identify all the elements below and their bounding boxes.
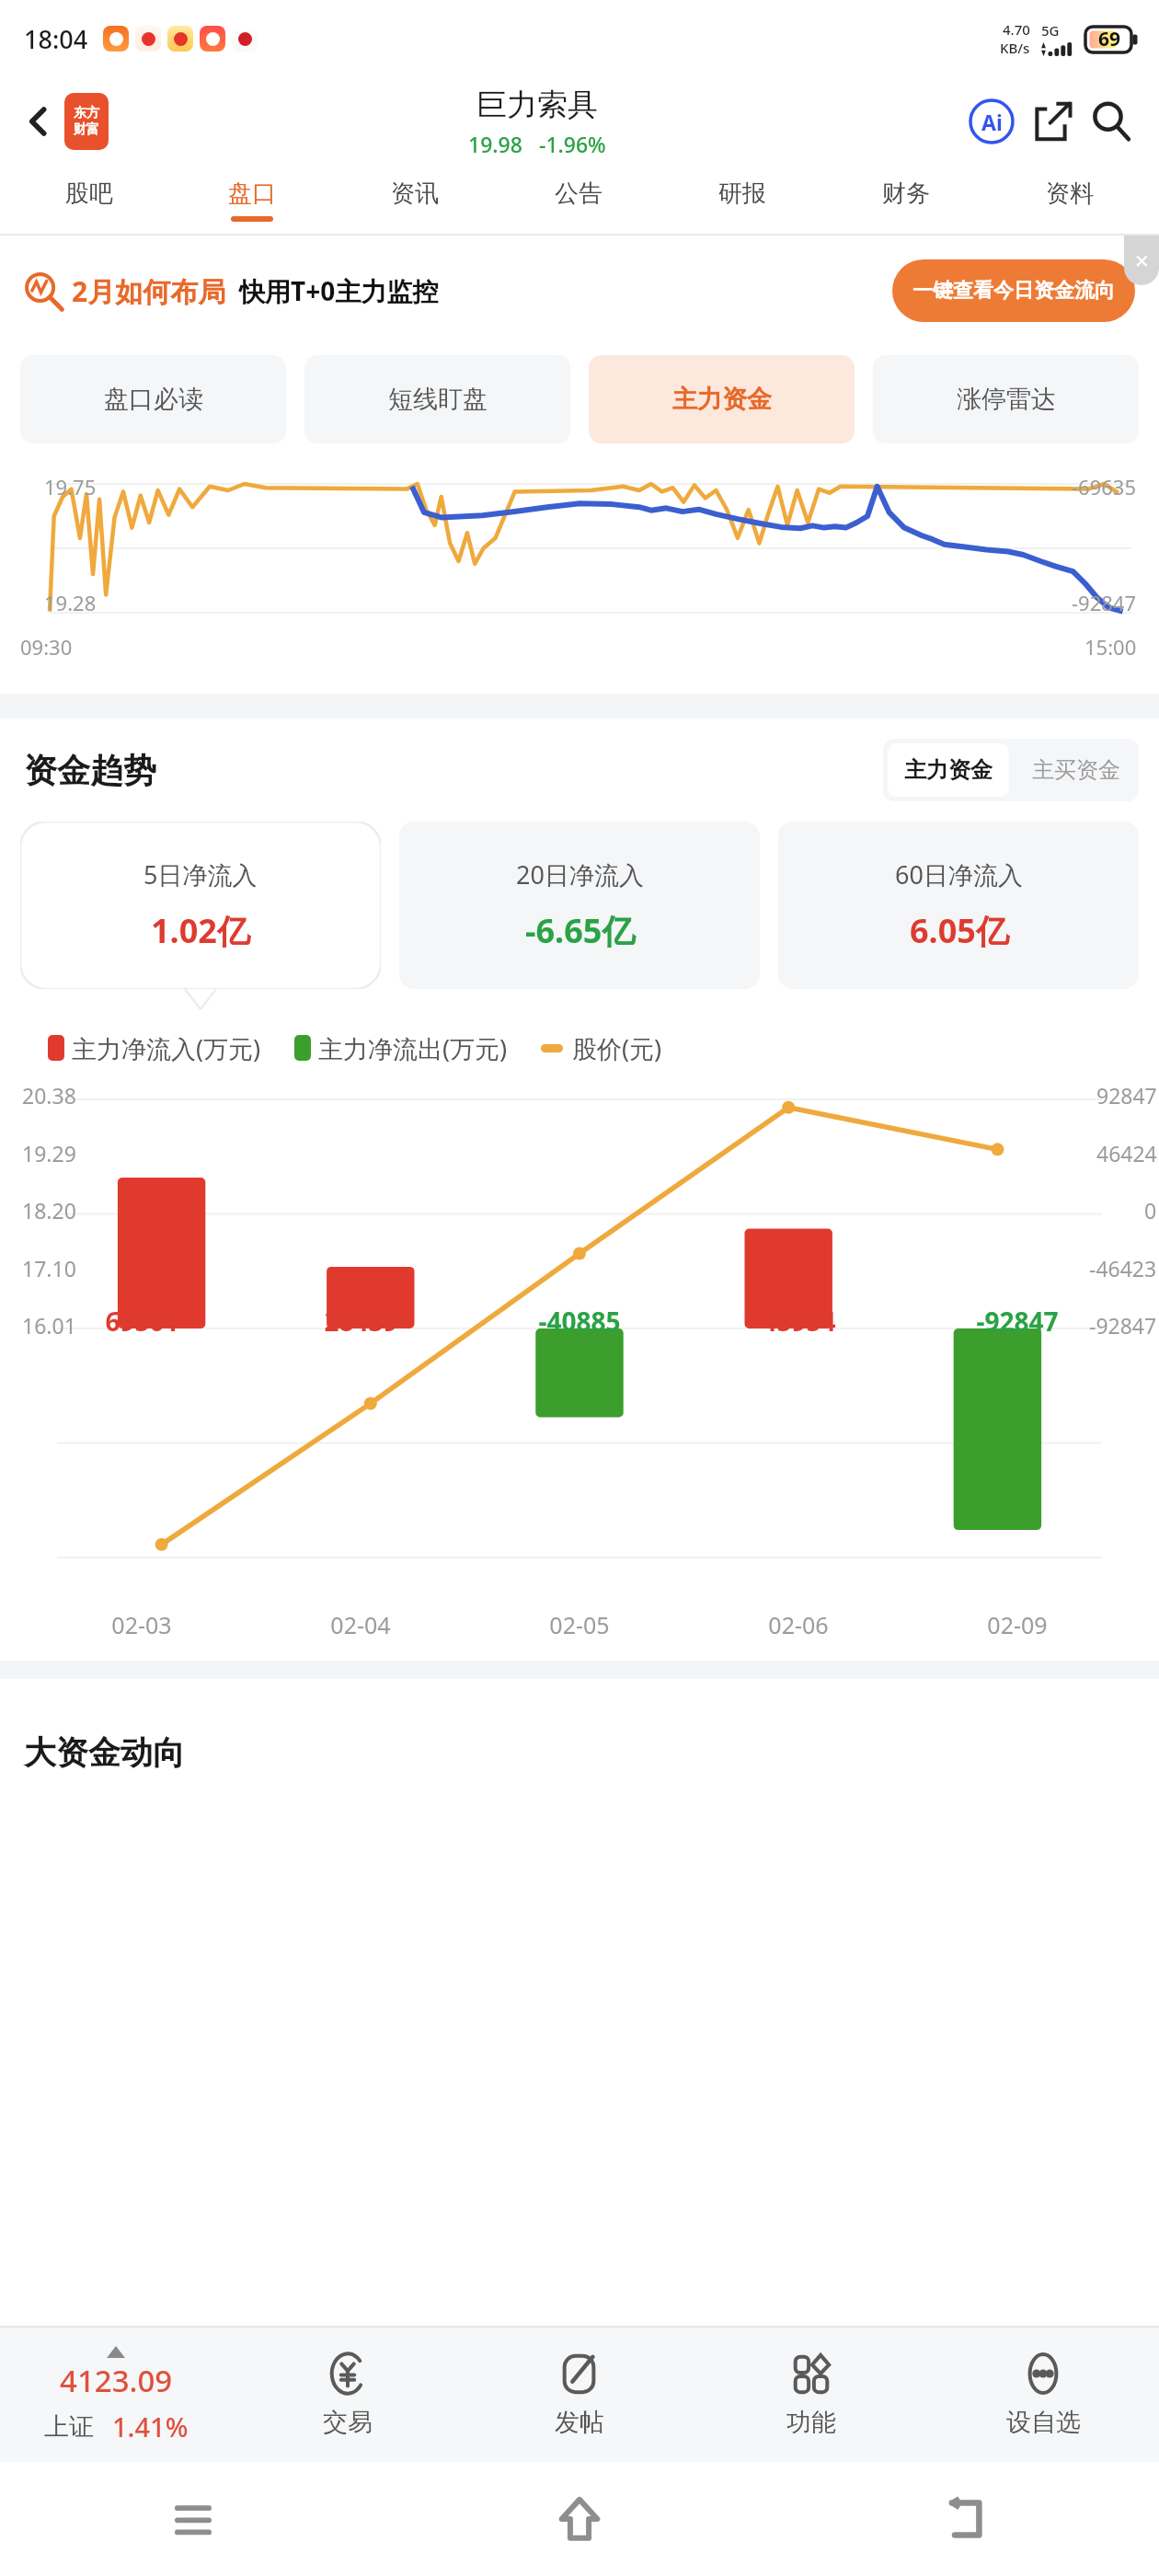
staticText: -46423 — [1089, 1254, 1157, 1282]
staticText: KB/s — [1000, 39, 1030, 57]
staticText: -1.96% — [539, 130, 606, 158]
staticText: 16.01 — [22, 1311, 76, 1340]
staticText: 盘口必读 — [104, 384, 203, 415]
staticText: 69 — [1098, 26, 1121, 52]
button[interactable]: Back — [773, 2462, 1159, 2576]
staticText: 18.20 — [22, 1196, 76, 1225]
staticText: 0 — [1144, 1196, 1157, 1225]
staticText: -92847 — [976, 1304, 1059, 1339]
staticText: 5日净流入 — [143, 857, 258, 891]
button[interactable]: 涨停雷达 — [873, 355, 1139, 443]
staticText: 02-03 — [111, 1609, 172, 1640]
staticText: 69501 — [105, 1304, 179, 1339]
button[interactable]: 盘口必读 — [20, 355, 286, 443]
staticText: 19.29 — [22, 1139, 76, 1167]
button[interactable]: 东方财富 — [64, 93, 109, 150]
staticText: 主力资金 — [904, 756, 993, 784]
staticText: 5G — [1041, 21, 1060, 40]
staticText: 15:00 — [1084, 633, 1137, 661]
staticText: 盘口 — [228, 178, 276, 209]
button[interactable]: 4123.09 — [0, 2328, 232, 2462]
staticText: 1.41% — [112, 2409, 189, 2444]
button[interactable]: 资讯 — [333, 166, 497, 234]
staticText: 功能 — [786, 2407, 836, 2438]
staticText: 19.98 — [468, 130, 522, 158]
button[interactable]: AI assistant — [966, 96, 1017, 147]
staticText: 18:04 — [24, 22, 88, 56]
staticText: 巨力索具 — [476, 86, 598, 124]
button[interactable]: 研报 — [660, 166, 824, 234]
staticText: 发帖 — [555, 2407, 604, 2438]
button[interactable]: 资料 — [988, 166, 1152, 234]
staticText: 28439 — [324, 1304, 398, 1339]
staticText: 4123.09 — [60, 2360, 173, 2401]
button[interactable]: Home — [386, 2462, 773, 2576]
staticText: -6.65亿 — [525, 908, 636, 953]
button[interactable]: 公告 — [497, 166, 660, 234]
button[interactable]: Close ad — [1124, 236, 1159, 285]
staticText: 股吧 — [65, 178, 113, 209]
staticText: 财富 — [74, 121, 99, 138]
staticText: 上证 — [44, 2411, 94, 2443]
staticText: -92847 — [1072, 589, 1137, 616]
staticText: 东方 — [74, 105, 99, 121]
staticText: 资讯 — [391, 178, 439, 209]
staticText: -92847 — [1089, 1311, 1157, 1340]
staticText: 20日净流入 — [516, 857, 644, 891]
staticText: 股价(元) — [572, 1031, 662, 1065]
button[interactable]: 设自选 — [927, 2328, 1159, 2462]
button[interactable]: 功能 — [695, 2328, 927, 2462]
staticText: 研报 — [718, 178, 766, 209]
staticText: 交易 — [323, 2407, 373, 2438]
staticText: 02-06 — [768, 1609, 829, 1640]
button[interactable]: 财务 — [824, 166, 988, 234]
button[interactable]: 主买资金 — [1014, 739, 1139, 801]
staticText: 资金趋势 — [24, 750, 156, 791]
button[interactable]: 20日净流入 — [399, 822, 760, 989]
staticText: 20.38 — [22, 1081, 76, 1110]
staticText: 大资金动向 — [24, 1732, 185, 1773]
staticText: 92847 — [1096, 1081, 1157, 1110]
staticText: 主力净流入(万元) — [72, 1031, 261, 1065]
staticText: 19.28 — [44, 589, 97, 616]
staticText: 45954 — [762, 1304, 836, 1339]
button[interactable]: 交易 — [232, 2328, 464, 2462]
staticText: 涨停雷达 — [957, 384, 1056, 415]
staticText: 4.70 — [1003, 20, 1030, 39]
staticText: 09:30 — [20, 633, 73, 661]
button[interactable]: 主力资金 — [888, 743, 1009, 797]
staticText: 公告 — [555, 178, 602, 209]
staticText: 资料 — [1046, 178, 1094, 209]
button[interactable]: 短线盯盘 — [304, 355, 570, 443]
button[interactable]: 5日净流入 — [20, 822, 381, 989]
staticText: 主买资金 — [1032, 756, 1120, 784]
button[interactable]: Search — [1085, 96, 1137, 147]
staticText: 19.75 — [44, 473, 97, 500]
button[interactable]: 60日净流入 — [778, 822, 1139, 989]
staticText: 设自选 — [1006, 2407, 1081, 2438]
staticText: 46424 — [1096, 1139, 1157, 1167]
button[interactable]: 盘口 — [170, 166, 333, 234]
button[interactable]: 发帖 — [464, 2328, 695, 2462]
staticText: 短线盯盘 — [388, 384, 488, 415]
staticText: 02-05 — [549, 1609, 610, 1640]
staticText: 主力资金 — [672, 384, 772, 415]
staticText: 2月如何布局 — [72, 272, 226, 310]
staticText: ✕ — [1134, 250, 1150, 271]
button[interactable]: 股吧 — [7, 166, 170, 234]
button[interactable]: 一键查看今日资金流向 — [892, 259, 1135, 322]
staticText: -40885 — [538, 1304, 621, 1339]
staticText: 17.10 — [22, 1254, 76, 1282]
staticText: 02-04 — [330, 1609, 391, 1640]
button[interactable]: 主力资金 — [589, 355, 855, 443]
staticText: Ai — [981, 108, 1003, 136]
staticText: 主力净流出(万元) — [318, 1031, 508, 1065]
button[interactable]: Recents — [0, 2462, 386, 2576]
button[interactable]: Share — [1028, 97, 1078, 146]
staticText: 财务 — [882, 178, 930, 209]
button[interactable]: Back — [13, 96, 64, 147]
staticText: 60日净流入 — [895, 857, 1023, 891]
staticText: 快用T+0主力监控 — [239, 273, 439, 308]
staticText: 一键查看今日资金流向 — [912, 278, 1115, 304]
staticText: -69635 — [1072, 473, 1137, 500]
